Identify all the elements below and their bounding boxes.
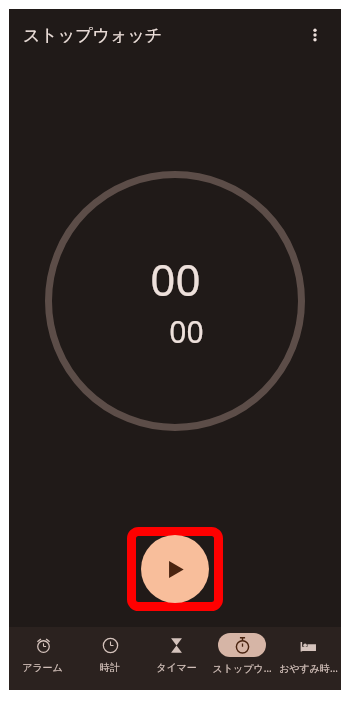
button[interactable]: 時計	[76, 627, 143, 690]
button[interactable]: More options	[295, 15, 335, 55]
button[interactable]: タイマー	[143, 627, 209, 690]
staticText: 時計	[100, 661, 120, 674]
staticText: 00	[169, 311, 204, 352]
button[interactable]: おやすみ時…	[275, 627, 341, 690]
staticText: タイマー	[156, 661, 197, 674]
button[interactable]: ストップウ…	[209, 627, 275, 690]
button[interactable]: アラーム	[9, 627, 76, 690]
staticText: おやすみ時…	[279, 661, 338, 675]
staticText: 00	[150, 249, 201, 309]
staticText: ストップウ…	[212, 661, 272, 675]
button[interactable]: Start	[141, 535, 209, 603]
staticText: ストップウォッチ	[23, 25, 163, 46]
staticText: アラーム	[22, 661, 63, 674]
